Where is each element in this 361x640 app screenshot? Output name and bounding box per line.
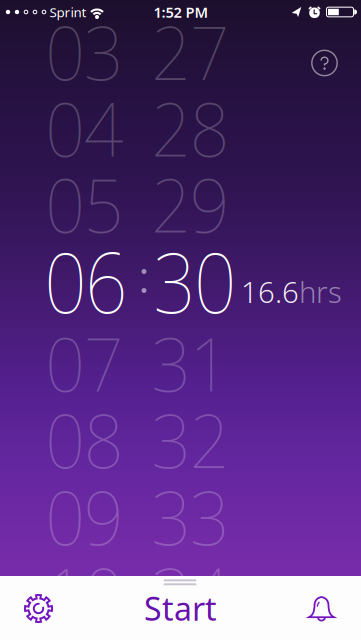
- staticText: 28: [149, 79, 232, 177]
- staticText: 1:52 PM: [153, 2, 208, 22]
- staticText: hrs: [299, 272, 342, 311]
- staticText: 27: [149, 3, 232, 100]
- staticText: 10: [43, 545, 126, 640]
- staticText: 33: [149, 468, 232, 565]
- staticText: 30: [148, 226, 241, 336]
- staticText: 05: [43, 155, 126, 253]
- button[interactable]: Help: [307, 46, 341, 80]
- staticText: 09: [43, 468, 126, 565]
- button[interactable]: Settings: [16, 586, 60, 630]
- staticText: 04: [43, 79, 126, 177]
- staticText: 16.6: [241, 272, 299, 311]
- staticText: 34: [149, 545, 232, 640]
- staticText: 31: [149, 314, 232, 412]
- staticText: 32: [149, 391, 232, 488]
- staticText: 03: [43, 3, 126, 100]
- staticText: 06: [39, 226, 132, 336]
- staticText: Sprint: [49, 3, 86, 21]
- staticText: Start: [144, 587, 217, 630]
- button[interactable]: Alarm sound: [299, 585, 343, 631]
- staticText: 08: [43, 391, 126, 488]
- button[interactable]: Start: [120, 586, 240, 630]
- staticText: 29: [149, 155, 232, 253]
- staticText: 07: [43, 314, 126, 412]
